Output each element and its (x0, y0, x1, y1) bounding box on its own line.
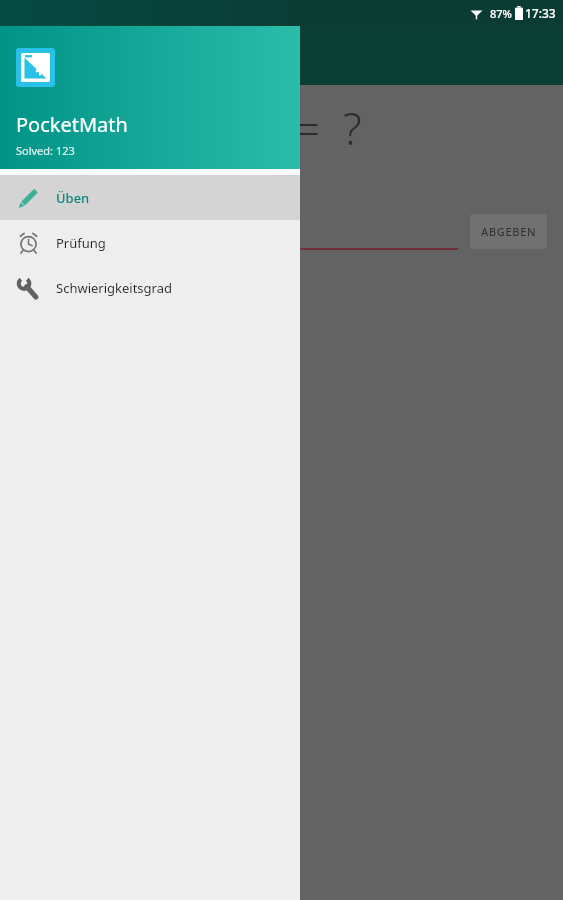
staticText: Üben (56, 189, 90, 207)
other: Wi-Fi (470, 7, 483, 20)
button[interactable]: ABGEBEN (470, 214, 547, 249)
other: Battery (515, 6, 523, 20)
staticText: 9 = ? (247, 98, 362, 158)
staticText: Solved: 123 (16, 143, 75, 158)
staticText: 17:33 (525, 5, 556, 21)
button[interactable]: Üben (0, 175, 300, 220)
staticText: PocketMath (16, 111, 128, 138)
staticText: Prüfung (56, 234, 106, 252)
staticText: Schwierigkeitsgrad (56, 279, 172, 297)
staticText: 87% (490, 6, 512, 21)
button[interactable]: Schwierigkeitsgrad (0, 265, 300, 310)
staticText: ABGEBEN (481, 224, 537, 239)
button[interactable]: Prüfung (0, 220, 300, 265)
